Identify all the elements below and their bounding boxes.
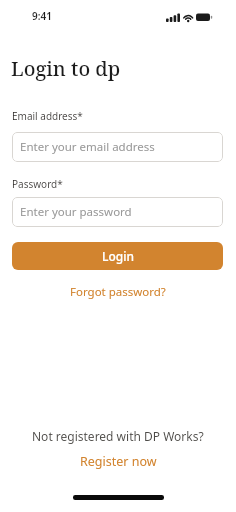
staticText: Forgot password? [70,284,166,300]
button[interactable]: Forgot password? [70,284,166,300]
staticText: 9:41 [32,9,52,23]
staticText: Enter your email address [20,139,155,155]
button[interactable]: Register now [80,453,157,470]
button[interactable]: Login [12,242,223,270]
button[interactable]: Enter your email address [12,132,223,162]
staticText: Login [102,248,134,264]
staticText: Password* [12,177,63,191]
staticText: Register now [80,453,157,470]
staticText: Enter your password [20,204,132,220]
staticText: Email address* [12,109,83,123]
button[interactable]: Enter your password [12,197,223,227]
staticText: Login to dp [11,55,121,82]
staticText: Not registered with DP Works? [32,428,204,444]
